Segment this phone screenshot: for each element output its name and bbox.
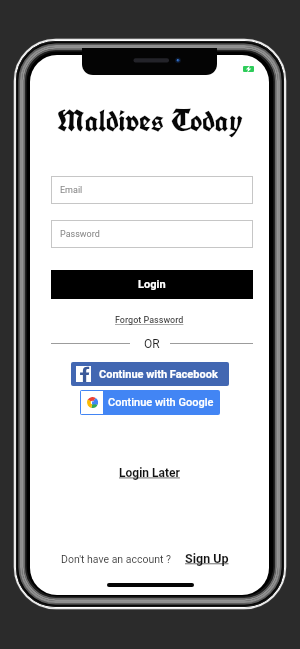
staticText: Login xyxy=(138,278,166,291)
button[interactable]: Forgot Password xyxy=(115,315,184,326)
button[interactable]: Continue with Facebook xyxy=(71,362,229,386)
staticText: Login Later xyxy=(119,466,180,480)
staticText: Don't have an account ? xyxy=(61,553,172,565)
button[interactable]: Sign Up xyxy=(185,551,229,566)
button[interactable]: Password xyxy=(51,220,253,248)
button[interactable]: Login xyxy=(51,270,253,299)
staticText: Password xyxy=(60,229,100,240)
staticText: OR xyxy=(144,337,160,351)
staticText: Forgot Password xyxy=(115,315,184,326)
staticText: Sign Up xyxy=(185,551,229,566)
staticText: Maldives Today xyxy=(57,101,243,140)
button[interactable]: Continue with Google xyxy=(80,390,220,415)
staticText: Email xyxy=(60,185,83,196)
button[interactable]: Login Later xyxy=(119,466,180,480)
staticText: Continue with Facebook xyxy=(99,368,218,381)
staticText: Continue with Google xyxy=(108,396,214,409)
button[interactable]: Email xyxy=(51,176,253,204)
